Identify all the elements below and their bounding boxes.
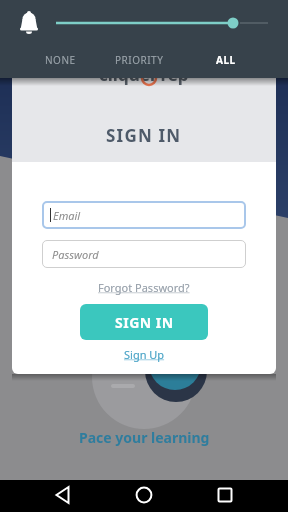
button[interactable] (14, 6, 44, 40)
button[interactable]: Password (42, 240, 246, 268)
button[interactable] (211, 482, 239, 510)
staticText: SIGN IN (115, 313, 174, 332)
staticText: Email (53, 208, 81, 223)
button[interactable]: Email (42, 201, 246, 229)
button[interactable]: Sign Up (124, 347, 165, 362)
button[interactable]: NONE (45, 53, 76, 67)
button[interactable]: SIGN IN (80, 304, 208, 340)
staticText: Pace your learning (79, 428, 210, 447)
button[interactable]: ALL (216, 53, 236, 67)
button[interactable]: Forgot Password? (98, 280, 190, 295)
button[interactable]: PRIORITY (115, 53, 164, 67)
staticText: cliquePrep (99, 63, 189, 86)
button[interactable] (130, 482, 158, 510)
button[interactable] (0, 0, 288, 78)
staticText: SIGN IN (106, 124, 182, 147)
staticText: Password (52, 247, 99, 262)
button[interactable] (50, 482, 78, 510)
